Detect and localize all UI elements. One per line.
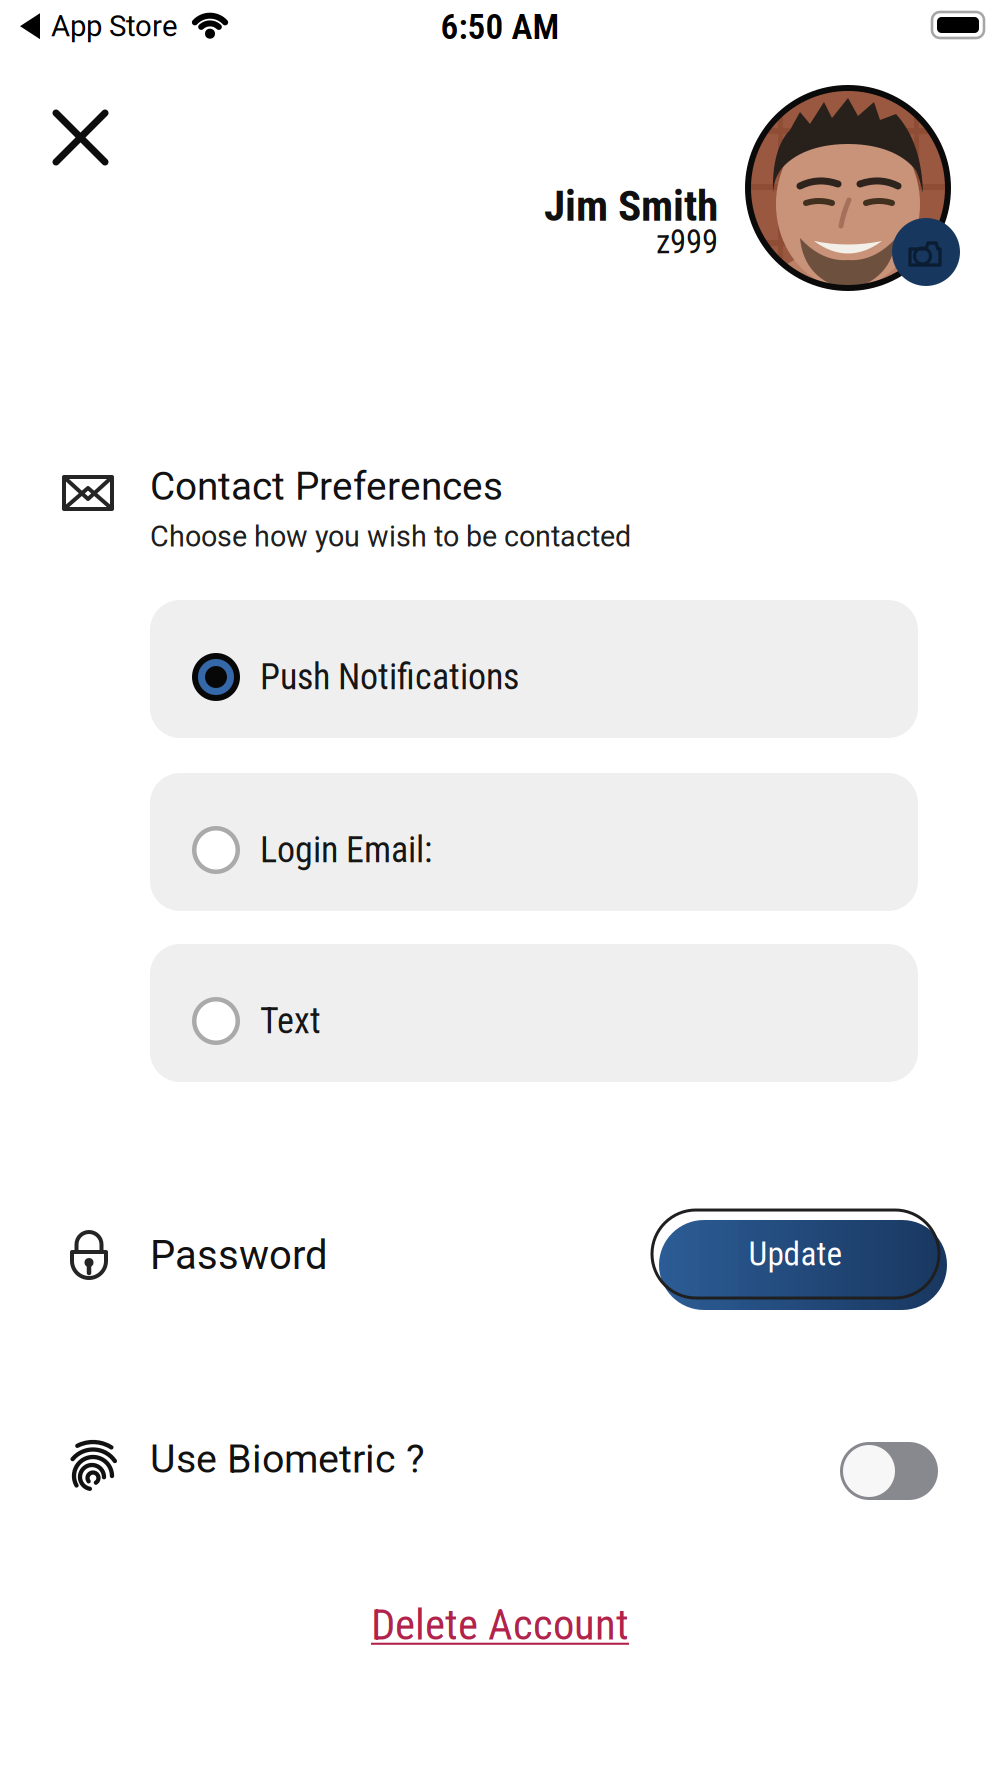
staticText: Delete Account	[371, 1600, 629, 1650]
button[interactable]: Close	[42, 99, 119, 176]
button[interactable]: Delete Account	[363, 1592, 637, 1658]
staticText: Use Biometric ?	[150, 1436, 425, 1482]
button[interactable]: Login Email:	[150, 773, 918, 911]
staticText: z999	[656, 223, 718, 261]
button[interactable]: Use Biometric	[840, 1442, 938, 1500]
button[interactable]: Text	[150, 944, 918, 1082]
button[interactable]: Push Notifications	[150, 600, 918, 738]
staticText: 6:50 AM	[440, 6, 559, 48]
staticText: Contact Preferences	[150, 464, 503, 509]
staticText: Jim Smith	[544, 181, 718, 231]
staticText: Password	[150, 1232, 328, 1279]
button[interactable]: Update	[652, 1210, 947, 1310]
staticText: Choose how you wish to be contacted	[150, 520, 631, 554]
staticText: Push Notifications	[260, 656, 519, 698]
button[interactable]: Back to App Store	[20, 9, 231, 43]
button[interactable]: Change photo	[892, 218, 960, 286]
staticText: App Store	[51, 9, 178, 43]
staticText: Login Email:	[260, 829, 432, 871]
staticText: Update	[748, 1234, 842, 1274]
staticText: Text	[260, 1000, 321, 1042]
